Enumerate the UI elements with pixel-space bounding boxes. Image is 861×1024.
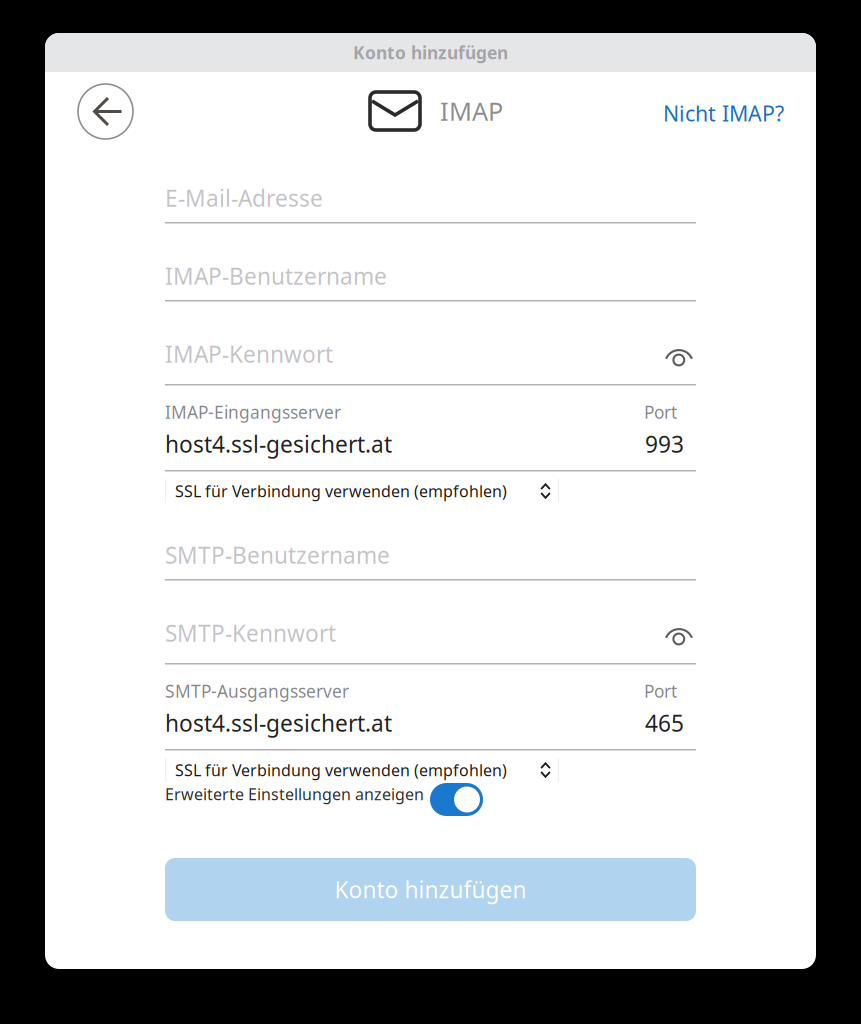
staticText: host4.ssl-gesichert.at [165, 429, 392, 459]
button[interactable]: Erweiterte Einstellungen anzeigen [430, 783, 483, 816]
button[interactable]: SSL für Verbindung verwenden (empfohlen) [165, 478, 559, 504]
staticText: host4.ssl-gesichert.at [165, 708, 392, 738]
staticText: Konto hinzufügen [334, 874, 526, 904]
button[interactable]: Konto hinzufügen [165, 858, 696, 921]
staticText: IMAP-Eingangsserver [165, 400, 341, 423]
staticText: Erweiterte Einstellungen anzeigen [165, 783, 424, 805]
staticText: SSL für Verbindung verwenden (empfohlen) [175, 480, 507, 502]
staticText: IMAP [440, 94, 503, 128]
staticText: SMTP-Ausgangsserver [165, 679, 349, 702]
button[interactable]: SMTP-Kennwort anzeigen [665, 625, 693, 645]
staticText: SMTP-Benutzername [165, 540, 390, 570]
button[interactable]: IMAP-Kennwort anzeigen [665, 346, 693, 366]
staticText: Nicht IMAP? [663, 99, 784, 127]
staticText: Port [644, 400, 677, 423]
staticText: IMAP-Benutzername [165, 261, 387, 291]
staticText: IMAP-Kennwort [165, 339, 333, 369]
button[interactable]: Zurück [78, 84, 133, 139]
staticText: Konto hinzufügen [353, 41, 508, 64]
button[interactable]: Nicht IMAP? [663, 99, 784, 127]
staticText: 465 [645, 708, 684, 738]
staticText: SMTP-Kennwort [165, 618, 336, 648]
staticText: SSL für Verbindung verwenden (empfohlen) [175, 759, 507, 781]
button[interactable]: SSL für Verbindung verwenden (empfohlen) [165, 757, 559, 783]
staticText: Port [644, 679, 677, 702]
staticText: E-Mail-Adresse [165, 183, 323, 213]
staticText: 993 [645, 429, 684, 459]
